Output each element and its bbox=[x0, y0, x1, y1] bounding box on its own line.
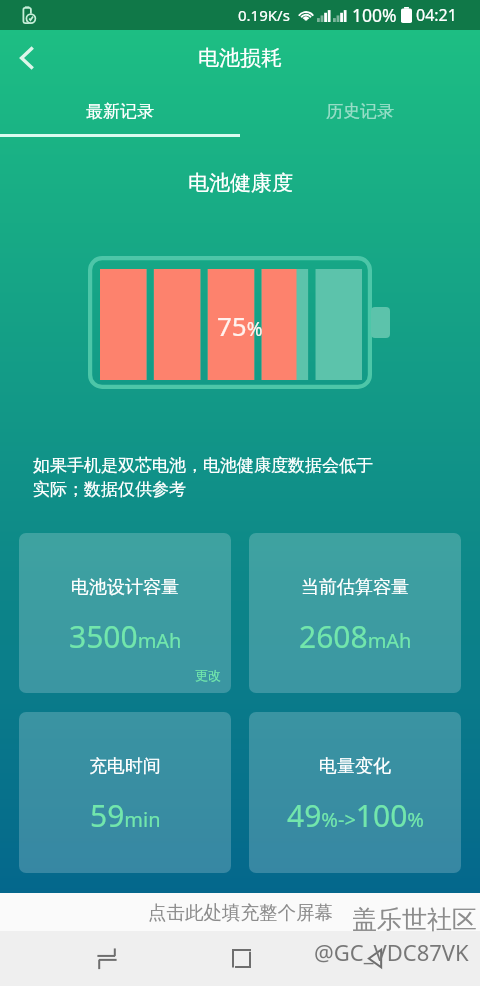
staticText: 历史记录 bbox=[326, 101, 394, 122]
staticText: 电池设计容量 bbox=[71, 576, 179, 599]
button[interactable]: 当前估算容量 bbox=[249, 533, 461, 693]
staticText: 电池损耗 bbox=[198, 45, 282, 71]
staticText: 75% bbox=[217, 308, 263, 343]
staticText: 59min bbox=[90, 795, 161, 836]
staticText: 当前估算容量 bbox=[301, 576, 409, 599]
button[interactable]: Back bbox=[0, 31, 54, 85]
button[interactable]: 最新记录 bbox=[0, 85, 240, 137]
button[interactable]: 充电时间 bbox=[19, 712, 231, 873]
button[interactable]: 电量变化 bbox=[249, 712, 461, 873]
staticText: 49%->100% bbox=[287, 795, 424, 836]
staticText: 电池健康度 bbox=[188, 170, 293, 196]
staticText: @GC_VDC87VK bbox=[314, 937, 469, 967]
staticText: 100% bbox=[352, 3, 397, 27]
staticText: 最新记录 bbox=[86, 101, 154, 122]
staticText: 3500mAh bbox=[69, 616, 182, 657]
button[interactable]: Back bbox=[345, 931, 405, 986]
staticText: 如果手机是双芯电池，电池健康度数据会低于实际；数据仅供参考 bbox=[33, 455, 378, 500]
button[interactable]: 历史记录 bbox=[240, 85, 480, 137]
staticText: 充电时间 bbox=[89, 755, 161, 778]
staticText: 电量变化 bbox=[319, 755, 391, 778]
button[interactable]: Home bbox=[211, 931, 271, 986]
button[interactable]: 电池设计容量 bbox=[19, 533, 231, 693]
staticText: 0.19K/s bbox=[238, 5, 290, 25]
button[interactable]: Recent apps bbox=[77, 931, 137, 986]
button[interactable]: 点击此处填充整个屏幕 bbox=[148, 901, 333, 924]
staticText: 盖乐世社区 bbox=[352, 904, 477, 935]
staticText: 更改 bbox=[195, 667, 221, 683]
staticText: 2608mAh bbox=[299, 616, 412, 657]
staticText: 04:21 bbox=[416, 4, 457, 26]
button[interactable]: 更改 bbox=[195, 667, 231, 693]
